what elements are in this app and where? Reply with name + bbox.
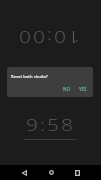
button[interactable]: Back [15, 165, 34, 180]
button[interactable]: Home [42, 165, 61, 180]
staticText: Reset both clocks? [11, 74, 48, 80]
button[interactable]: YES [76, 84, 90, 94]
staticText: 10:00 [16, 26, 80, 49]
staticText: NO [63, 86, 70, 92]
staticText: 9:58 [26, 113, 76, 136]
button[interactable]: Recent apps [68, 165, 87, 180]
staticText: YES [79, 86, 87, 92]
button[interactable]: NO [60, 84, 73, 94]
